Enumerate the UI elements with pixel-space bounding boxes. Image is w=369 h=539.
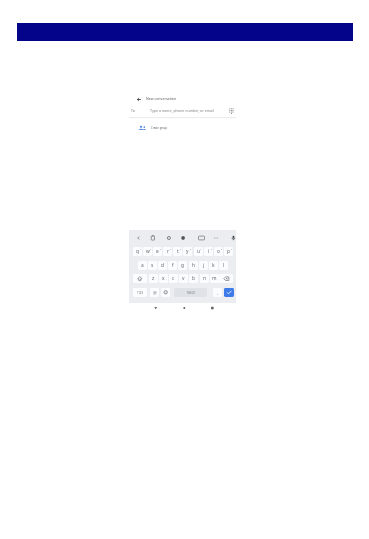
staticText: 9 [221,248,223,251]
staticText: 1 [140,248,142,251]
staticText: k [212,262,215,269]
staticText: g [181,262,184,269]
staticText: Create group [151,126,168,130]
staticText: o [217,248,220,255]
button[interactable]: r [163,247,172,256]
button[interactable]: g [178,261,187,270]
staticText: p [227,248,230,255]
staticText: s [151,262,154,269]
staticText: a [141,262,144,269]
button[interactable]: m [210,274,219,283]
button[interactable]: h [189,261,198,270]
button[interactable]: c [169,274,178,283]
staticText: d [161,262,164,269]
staticText: ?123 [137,291,144,295]
button[interactable]: y [183,247,192,256]
button[interactable]: t [173,247,182,256]
staticText: To [131,108,135,113]
button[interactable]: p [224,247,233,256]
button[interactable]: f [168,261,177,270]
staticText: n [203,275,206,282]
button[interactable]: d [158,261,167,270]
staticText: l [223,262,225,269]
button[interactable] [131,234,234,243]
button[interactable] [177,302,191,314]
button[interactable]: i [204,247,213,256]
button[interactable]: a [138,261,147,270]
button[interactable] [174,288,207,297]
staticText: SM-G0 [187,291,195,295]
staticText: 5 [180,248,182,251]
staticText: 7 [200,248,202,251]
button[interactable]: l [219,261,228,270]
button[interactable]: n [200,274,209,283]
staticText: 4 [170,248,172,251]
button[interactable]: w [143,247,152,256]
staticText: 8 [211,248,213,251]
button[interactable] [129,104,236,118]
button[interactable] [129,121,236,134]
staticText: t [177,248,179,255]
button[interactable]: v [179,274,188,283]
staticText: Type a name, phone number, or email [150,108,214,113]
staticText: q [136,248,139,255]
button[interactable]: j [199,261,208,270]
staticText: w [146,248,150,255]
staticText: 6 [190,248,192,251]
staticText: New conversation [146,96,177,101]
button[interactable]: e [153,247,162,256]
button[interactable]: z [149,274,158,283]
button[interactable]: s [148,261,157,270]
button[interactable]: @ [150,288,159,297]
staticText: 0 [231,248,233,251]
button[interactable]: b [189,274,198,283]
staticText: 2 [150,248,152,251]
staticText: c [172,275,175,282]
staticText: u [197,248,200,255]
button[interactable]: x [159,274,168,283]
staticText: h [192,262,195,269]
staticText: m [212,275,217,282]
button[interactable] [133,274,147,283]
button[interactable] [135,95,143,103]
staticText: f [172,262,174,269]
button[interactable] [205,302,219,314]
button[interactable]: ?123 [133,288,147,297]
staticText: i [208,248,210,255]
staticText: 3 [160,248,162,251]
staticText: . [217,290,219,296]
button[interactable]: k [209,261,218,270]
button[interactable] [161,288,170,297]
staticText: v [182,275,185,282]
staticText: x [162,275,165,282]
staticText: b [192,275,195,282]
staticText: j [203,262,205,269]
staticText: @ [153,290,157,295]
staticText: r [167,248,169,255]
button[interactable] [149,302,163,314]
staticText: y [186,248,189,255]
button[interactable]: u [194,247,203,256]
staticText: z [152,275,155,282]
button[interactable]: . [213,288,222,297]
button[interactable] [224,288,234,297]
button[interactable]: o [214,247,223,256]
button[interactable]: q [133,247,142,256]
button[interactable] [219,274,233,283]
staticText: e [156,248,159,255]
